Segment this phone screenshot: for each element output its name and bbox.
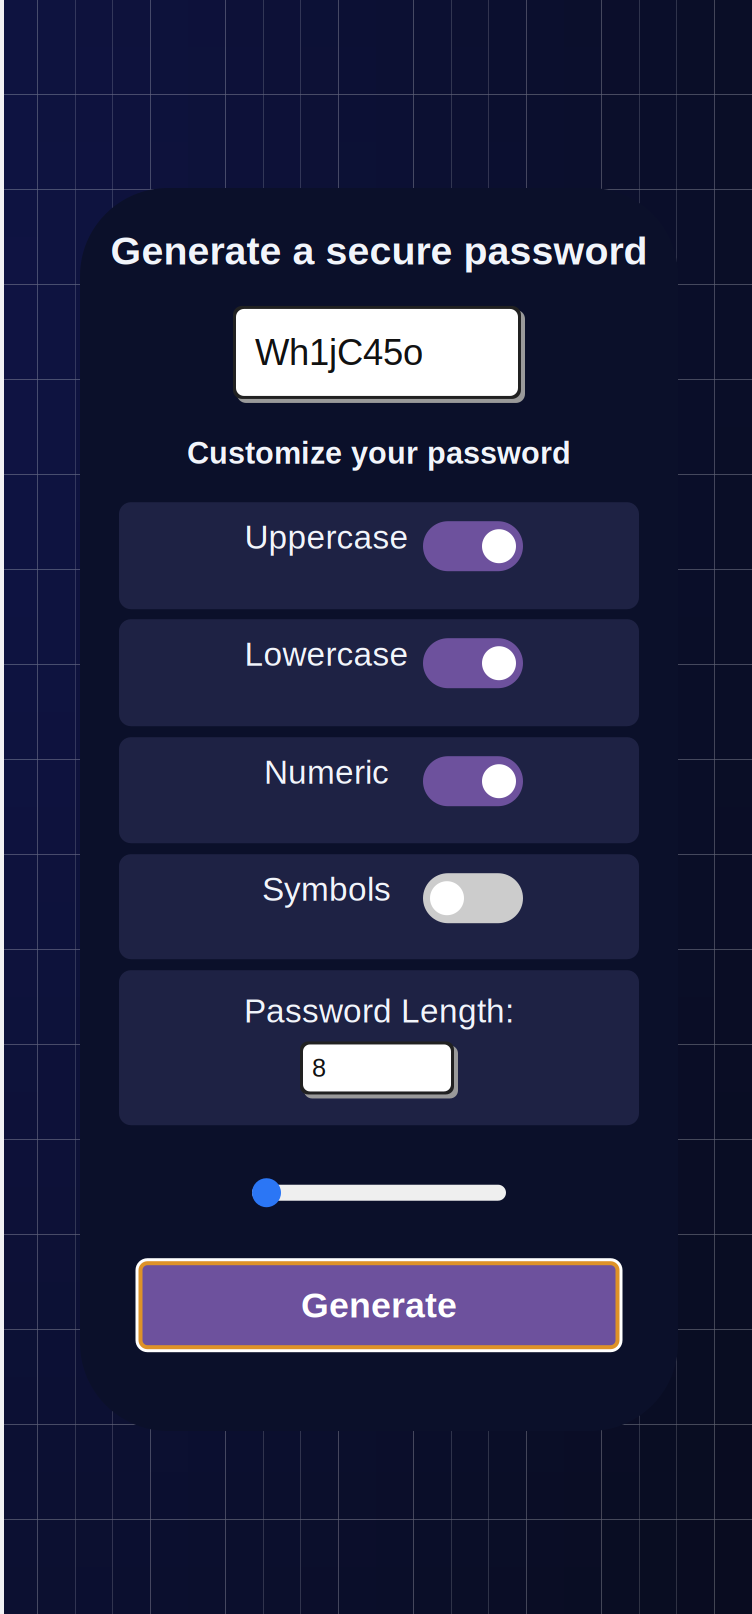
button[interactable]: Symbols bbox=[119, 854, 639, 959]
staticText: 8 bbox=[312, 1054, 326, 1082]
button[interactable]: Wh1jC45o bbox=[233, 306, 525, 403]
button[interactable]: 8 bbox=[300, 1041, 458, 1098]
staticText: Symbols bbox=[262, 871, 391, 908]
button[interactable]: Generate bbox=[135, 1258, 622, 1352]
staticText: Customize your password bbox=[187, 436, 571, 470]
button[interactable]: Lowercase bbox=[119, 619, 639, 726]
button[interactable]: Password length slider bbox=[252, 1178, 506, 1207]
staticText: Generate a secure password bbox=[110, 229, 647, 273]
button[interactable]: Numeric bbox=[119, 737, 639, 843]
staticText: Password Length: bbox=[244, 992, 514, 1029]
staticText: Uppercase bbox=[244, 519, 408, 556]
staticText: Generate bbox=[301, 1285, 457, 1325]
button[interactable]: Uppercase bbox=[119, 502, 639, 609]
staticText: Wh1jC45o bbox=[255, 332, 423, 373]
staticText: Lowercase bbox=[244, 636, 408, 673]
staticText: Numeric bbox=[264, 754, 389, 791]
